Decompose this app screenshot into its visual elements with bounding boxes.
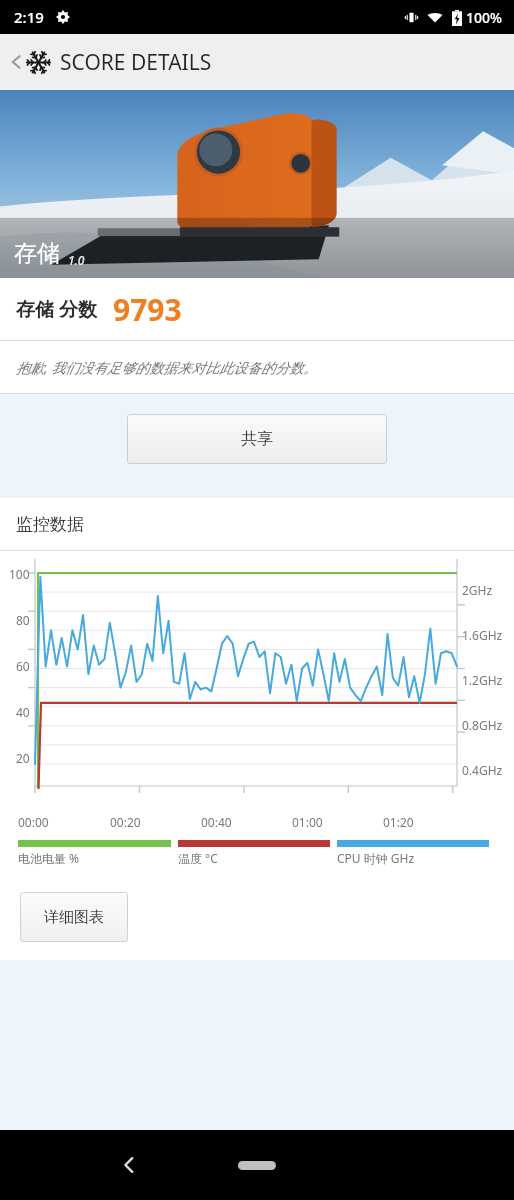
staticText: 1.0 (68, 252, 85, 268)
staticText: 0.8GHz (462, 717, 503, 733)
staticText: 1.6GHz (462, 627, 503, 643)
button[interactable]: 详细图表 (20, 892, 128, 942)
staticText: 01:00 (292, 814, 323, 830)
staticText: CPU 时钟 GHz (337, 850, 415, 866)
staticText: 1.2GHz (462, 672, 503, 688)
staticText: 监控数据 (16, 514, 84, 535)
staticText: 40 (16, 704, 30, 720)
staticText: 00:40 (201, 814, 232, 830)
staticText: 100 (9, 566, 30, 582)
staticText: 9793 (113, 289, 182, 330)
button[interactable]: Back to scores (0, 34, 514, 90)
staticText: 详细图表 (44, 908, 104, 927)
staticText: 80 (16, 612, 30, 628)
staticText: 00:20 (110, 814, 141, 830)
staticText: 0.4GHz (462, 762, 503, 778)
staticText: 温度 °C (178, 850, 218, 866)
staticText: 100% (466, 8, 502, 27)
staticText: 2GHz (462, 582, 493, 598)
button[interactable]: Back (105, 1141, 153, 1189)
staticText: 01:20 (383, 814, 414, 830)
staticText: 抱歉, 我们没有足够的数据来对比此设备的分数。 (16, 358, 318, 377)
staticText: 共享 (241, 429, 273, 449)
staticText: 电池电量 % (18, 850, 80, 866)
staticText: 20 (16, 750, 30, 766)
staticText: 00:00 (18, 814, 49, 830)
staticText: 60 (16, 658, 30, 674)
staticText: 存储 分数 (16, 296, 97, 322)
staticText: SCORE DETAILS (60, 48, 212, 77)
staticText: 存储 (14, 239, 60, 268)
button[interactable]: 共享 (127, 414, 387, 464)
button[interactable]: Home (221, 1148, 293, 1182)
staticText: 2:19 (14, 7, 44, 27)
